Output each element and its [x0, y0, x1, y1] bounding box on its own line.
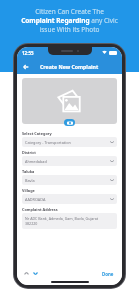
button[interactable]: Take photo	[64, 119, 75, 126]
staticText: District	[22, 150, 36, 155]
staticText: Taluka	[22, 169, 35, 174]
staticText: Bavla	[25, 178, 35, 183]
button[interactable]: Bavla	[22, 175, 117, 185]
button[interactable]: Add photo	[22, 78, 117, 124]
staticText: Create New Complaint	[40, 63, 99, 70]
staticText: AADROADA	[25, 197, 46, 202]
staticText: Nr ADC Bank, Admeda, Gam, Bavla, Gujarat…	[25, 216, 99, 226]
button[interactable]: Nr ADC Bank, Admeda, Gam, Bavla, Gujarat…	[22, 213, 117, 229]
staticText: Category - Transportation	[25, 140, 71, 145]
button[interactable]: Next field	[31, 269, 40, 278]
button[interactable]: Ahmedabad	[22, 156, 117, 166]
staticText: Ahmedabad	[25, 159, 47, 164]
button[interactable]: Previous field	[22, 269, 31, 278]
staticText: 12:55	[22, 50, 34, 56]
button[interactable]: Back	[20, 61, 31, 72]
staticText: Citizen Can Create The Complaint Regardi…	[21, 7, 118, 34]
staticText: Complaint Address	[22, 207, 58, 212]
button[interactable]: Done	[99, 271, 117, 277]
button[interactable]: Category - Transportation	[22, 137, 117, 147]
button[interactable]: AADROADA	[22, 194, 117, 204]
staticText: Village	[22, 188, 35, 193]
staticText: Select Category	[22, 131, 52, 136]
